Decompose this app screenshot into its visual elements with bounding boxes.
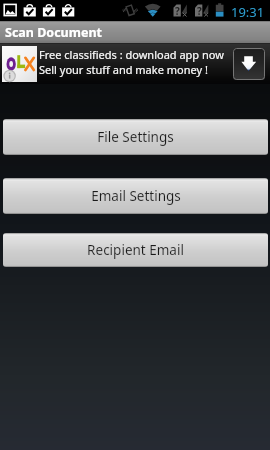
staticText: Scan Document [5, 24, 102, 41]
button[interactable]: Download [233, 48, 265, 80]
button[interactable]: Free classifieds : download app now [0, 43, 270, 84]
staticText: Sell your stuff and make money ! [39, 62, 208, 77]
staticText: 19:31 [231, 3, 265, 21]
button[interactable]: Email Settings [3, 178, 268, 214]
staticText: Free classifieds : download app now [39, 47, 224, 62]
staticText: Email Settings [91, 187, 181, 205]
staticText: ? [197, 4, 202, 18]
staticText: File Settings [97, 128, 174, 146]
staticText: Recipient Email [87, 241, 184, 259]
button[interactable]: File Settings [3, 119, 268, 155]
staticText: ? [175, 4, 180, 18]
button[interactable]: Recipient Email [3, 233, 268, 267]
